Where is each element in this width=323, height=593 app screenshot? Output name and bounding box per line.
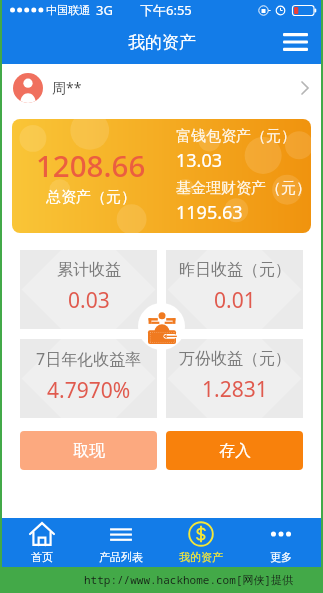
button[interactable]: 累计收益 (20, 250, 157, 329)
staticText: 4.7970% (47, 376, 131, 405)
staticText: 累计收益 (57, 260, 121, 280)
staticText: 0.01 (214, 286, 256, 315)
staticText: 取现 (73, 441, 105, 461)
staticText: 更多 (270, 550, 292, 564)
staticText: 万份收益（元） (179, 349, 291, 369)
staticText: 基金理财资产（元） (176, 179, 309, 198)
staticText: 我的资产 (128, 32, 196, 53)
button[interactable]: 昨日收益（元） (166, 250, 303, 329)
button[interactable]: 7日年化收益率 (20, 339, 157, 418)
staticText: 中国联通 (46, 3, 90, 17)
button[interactable]: 首页 (2, 518, 81, 567)
staticText: 存入 (219, 441, 251, 461)
staticText: 1.2831 (202, 375, 268, 404)
button[interactable]: Menu (278, 25, 312, 59)
staticText: 3G (96, 1, 113, 19)
staticText: 13.03 (176, 148, 223, 173)
button[interactable]: 周** (2, 64, 321, 111)
staticText: 1208.66 (36, 145, 146, 185)
staticText: 7日年化收益率 (36, 348, 142, 370)
staticText: 产品列表 (99, 550, 143, 564)
button[interactable]: 更多 (241, 518, 321, 567)
staticText: 下午6:55 (140, 1, 192, 19)
staticText: 昨日收益（元） (179, 260, 291, 280)
staticText: 富钱包资产（元） (176, 127, 296, 146)
button[interactable]: Wallet (138, 303, 185, 350)
button[interactable]: 我的资产 (161, 518, 241, 567)
button[interactable]: 万份收益（元） (166, 339, 303, 418)
staticText: 1195.63 (176, 200, 243, 225)
staticText: 总资产（元） (46, 188, 136, 207)
staticText: http://www.hackhome.com[网侠]提供 (84, 572, 293, 587)
button[interactable]: 存入 (166, 431, 303, 470)
staticText: 周** (52, 78, 82, 97)
button[interactable]: 产品列表 (81, 518, 161, 567)
staticText: 0.03 (68, 286, 110, 315)
button[interactable]: 取现 (20, 431, 157, 470)
button[interactable]: 1208.66 (12, 119, 311, 233)
staticText: 我的资产 (179, 550, 223, 564)
staticText: 首页 (31, 550, 53, 564)
